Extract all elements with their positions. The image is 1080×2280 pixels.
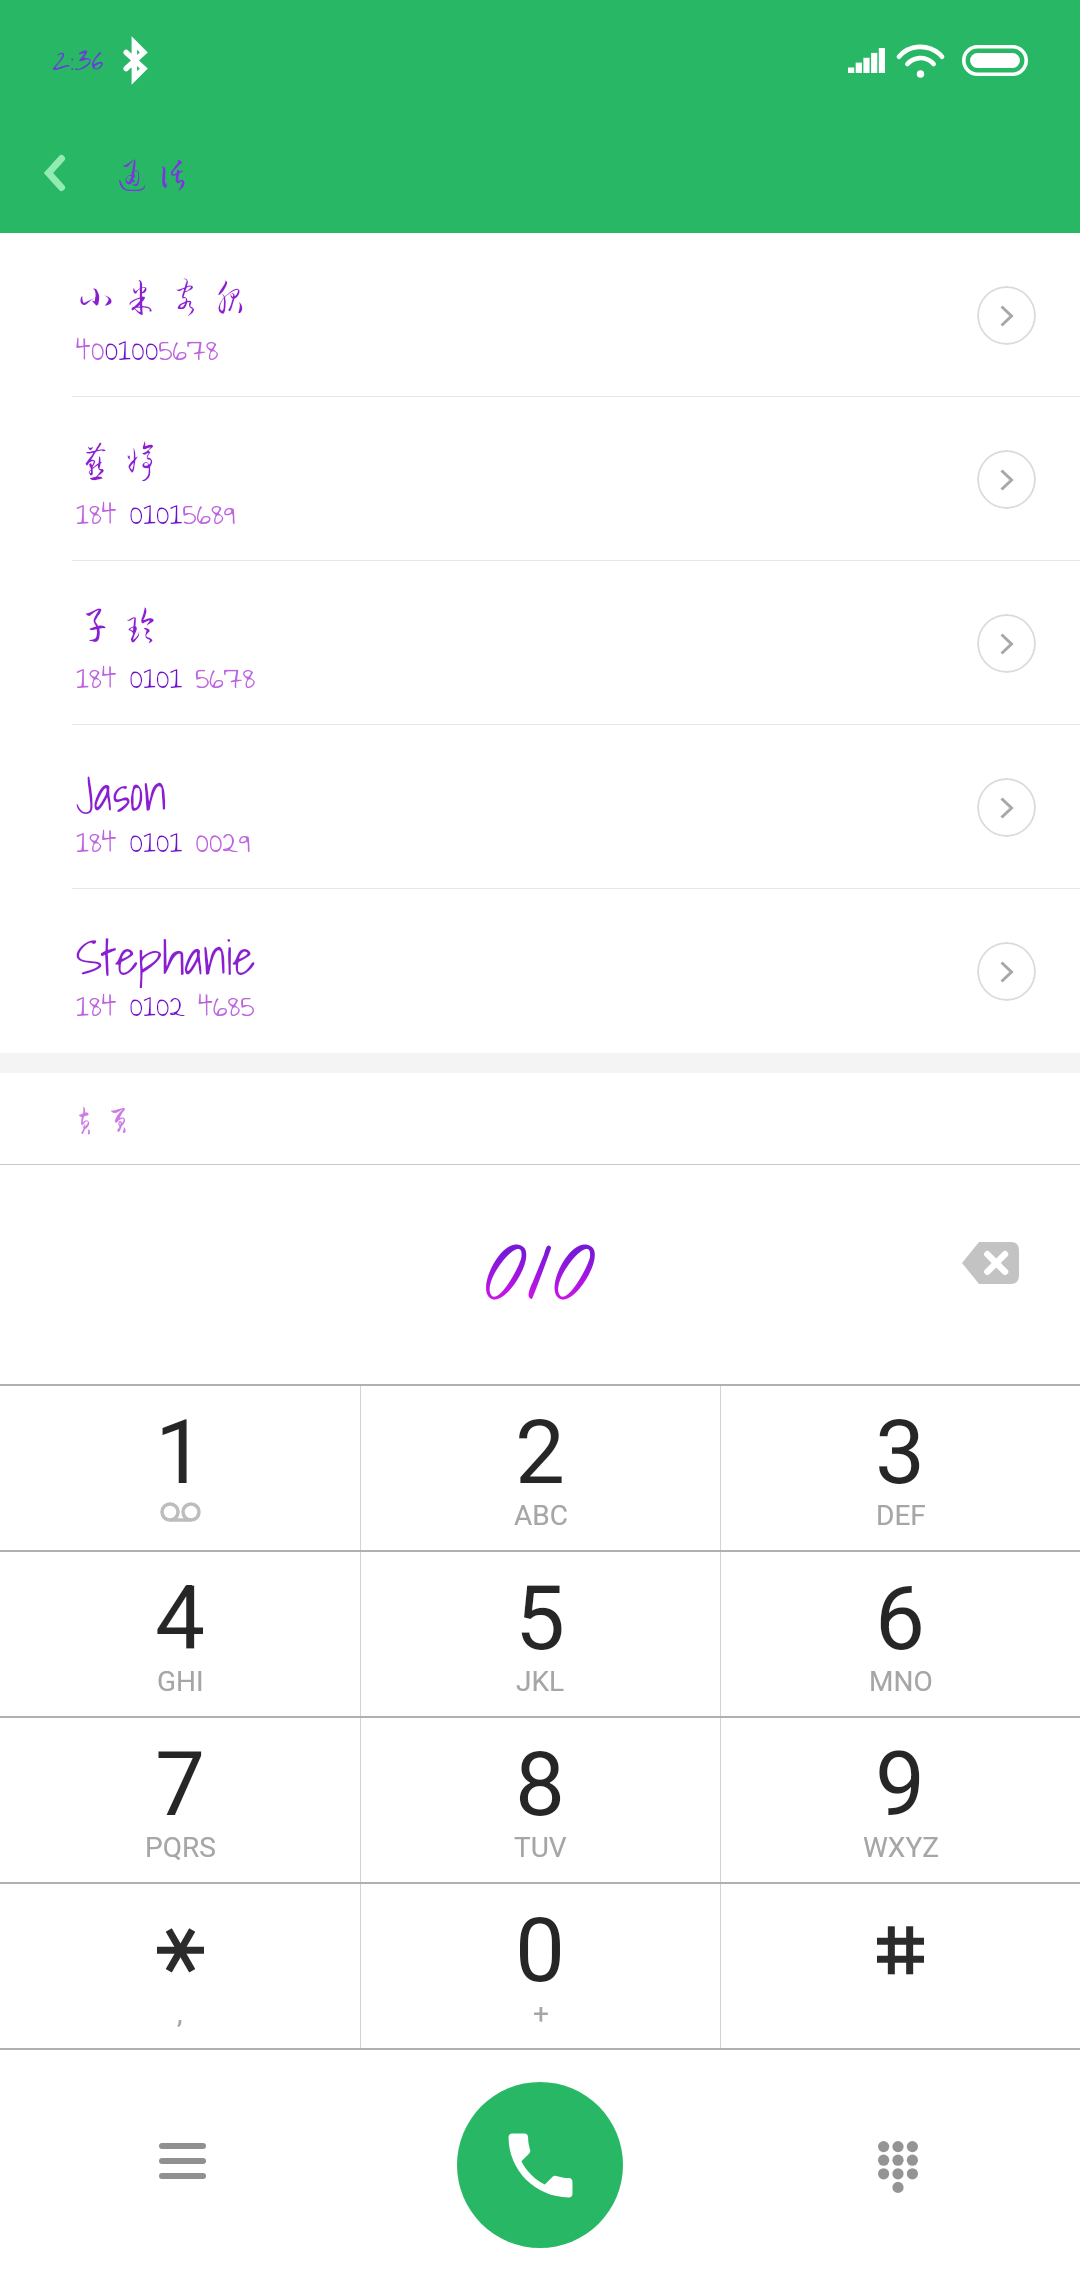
button[interactable]: 0: [361, 1884, 720, 2048]
button[interactable]: 8: [361, 1718, 720, 1882]
staticText: 184 01015689: [76, 489, 236, 538]
button[interactable]: ,: [0, 1884, 360, 2048]
button[interactable]: 小米客服: [0, 233, 1080, 397]
button[interactable]: Back: [0, 117, 110, 229]
staticText: 2: [515, 1400, 566, 1504]
button[interactable]: 1: [0, 1386, 360, 1550]
button[interactable]: Call details: [977, 450, 1036, 509]
staticText: DEF: [876, 1499, 926, 1532]
staticText: 184 0101 5678: [76, 653, 256, 702]
button[interactable]: 2: [361, 1386, 720, 1550]
staticText: 5: [515, 1566, 566, 1670]
staticText: 184 0101 0029: [76, 817, 251, 866]
button[interactable]: 7: [0, 1718, 360, 1882]
button[interactable]: 9: [721, 1718, 1080, 1882]
staticText: PQRS: [145, 1831, 216, 1864]
button[interactable]: 3: [721, 1386, 1080, 1550]
button[interactable]: Backspace: [935, 1208, 1045, 1318]
button[interactable]: Call details: [977, 286, 1036, 345]
button[interactable]: [721, 1884, 1080, 2048]
staticText: Jason: [76, 753, 167, 832]
staticText: 4001005678: [76, 325, 219, 374]
button[interactable]: Stephanie: [0, 889, 1080, 1053]
button[interactable]: Jason: [0, 725, 1080, 889]
button[interactable]: 5: [361, 1552, 720, 1716]
staticText: ,: [177, 1997, 183, 2030]
staticText: Stephanie: [76, 917, 256, 996]
staticText: 7: [155, 1732, 206, 1836]
button[interactable]: 6: [721, 1552, 1080, 1716]
staticText: MNO: [869, 1665, 933, 1698]
staticText: 010: [484, 1213, 597, 1336]
staticText: 6: [875, 1566, 926, 1670]
button[interactable]: Call details: [977, 942, 1036, 1001]
staticText: 9: [875, 1732, 926, 1836]
button[interactable]: Call details: [977, 778, 1036, 837]
button[interactable]: Dialpad: [843, 2112, 953, 2222]
staticText: 3: [875, 1400, 926, 1504]
button[interactable]: 子玲: [0, 561, 1080, 725]
button[interactable]: 黄页: [0, 1073, 1080, 1164]
button[interactable]: Call details: [977, 614, 1036, 673]
staticText: ABC: [514, 1499, 568, 1532]
staticText: 子玲: [76, 605, 166, 643]
staticText: 1: [155, 1400, 206, 1504]
button[interactable]: 燕婷: [0, 397, 1080, 561]
staticText: 通话: [115, 157, 197, 229]
staticText: JKL: [516, 1665, 565, 1698]
staticText: 184 0102 4685: [76, 981, 255, 1030]
staticText: 4: [155, 1566, 206, 1670]
staticText: +: [533, 1997, 549, 2030]
staticText: 2:36: [52, 38, 104, 83]
staticText: 8: [515, 1732, 566, 1836]
staticText: WXYZ: [863, 1831, 939, 1864]
staticText: 燕婷: [76, 441, 166, 479]
staticText: TUV: [514, 1831, 567, 1864]
staticText: 黄页: [70, 1105, 138, 1133]
staticText: GHI: [157, 1665, 204, 1698]
button[interactable]: 4: [0, 1552, 360, 1716]
staticText: 0: [515, 1898, 566, 2002]
staticText: 小米客服: [76, 277, 256, 315]
button[interactable]: Menu: [127, 2106, 237, 2216]
button[interactable]: Call: [457, 2082, 623, 2248]
